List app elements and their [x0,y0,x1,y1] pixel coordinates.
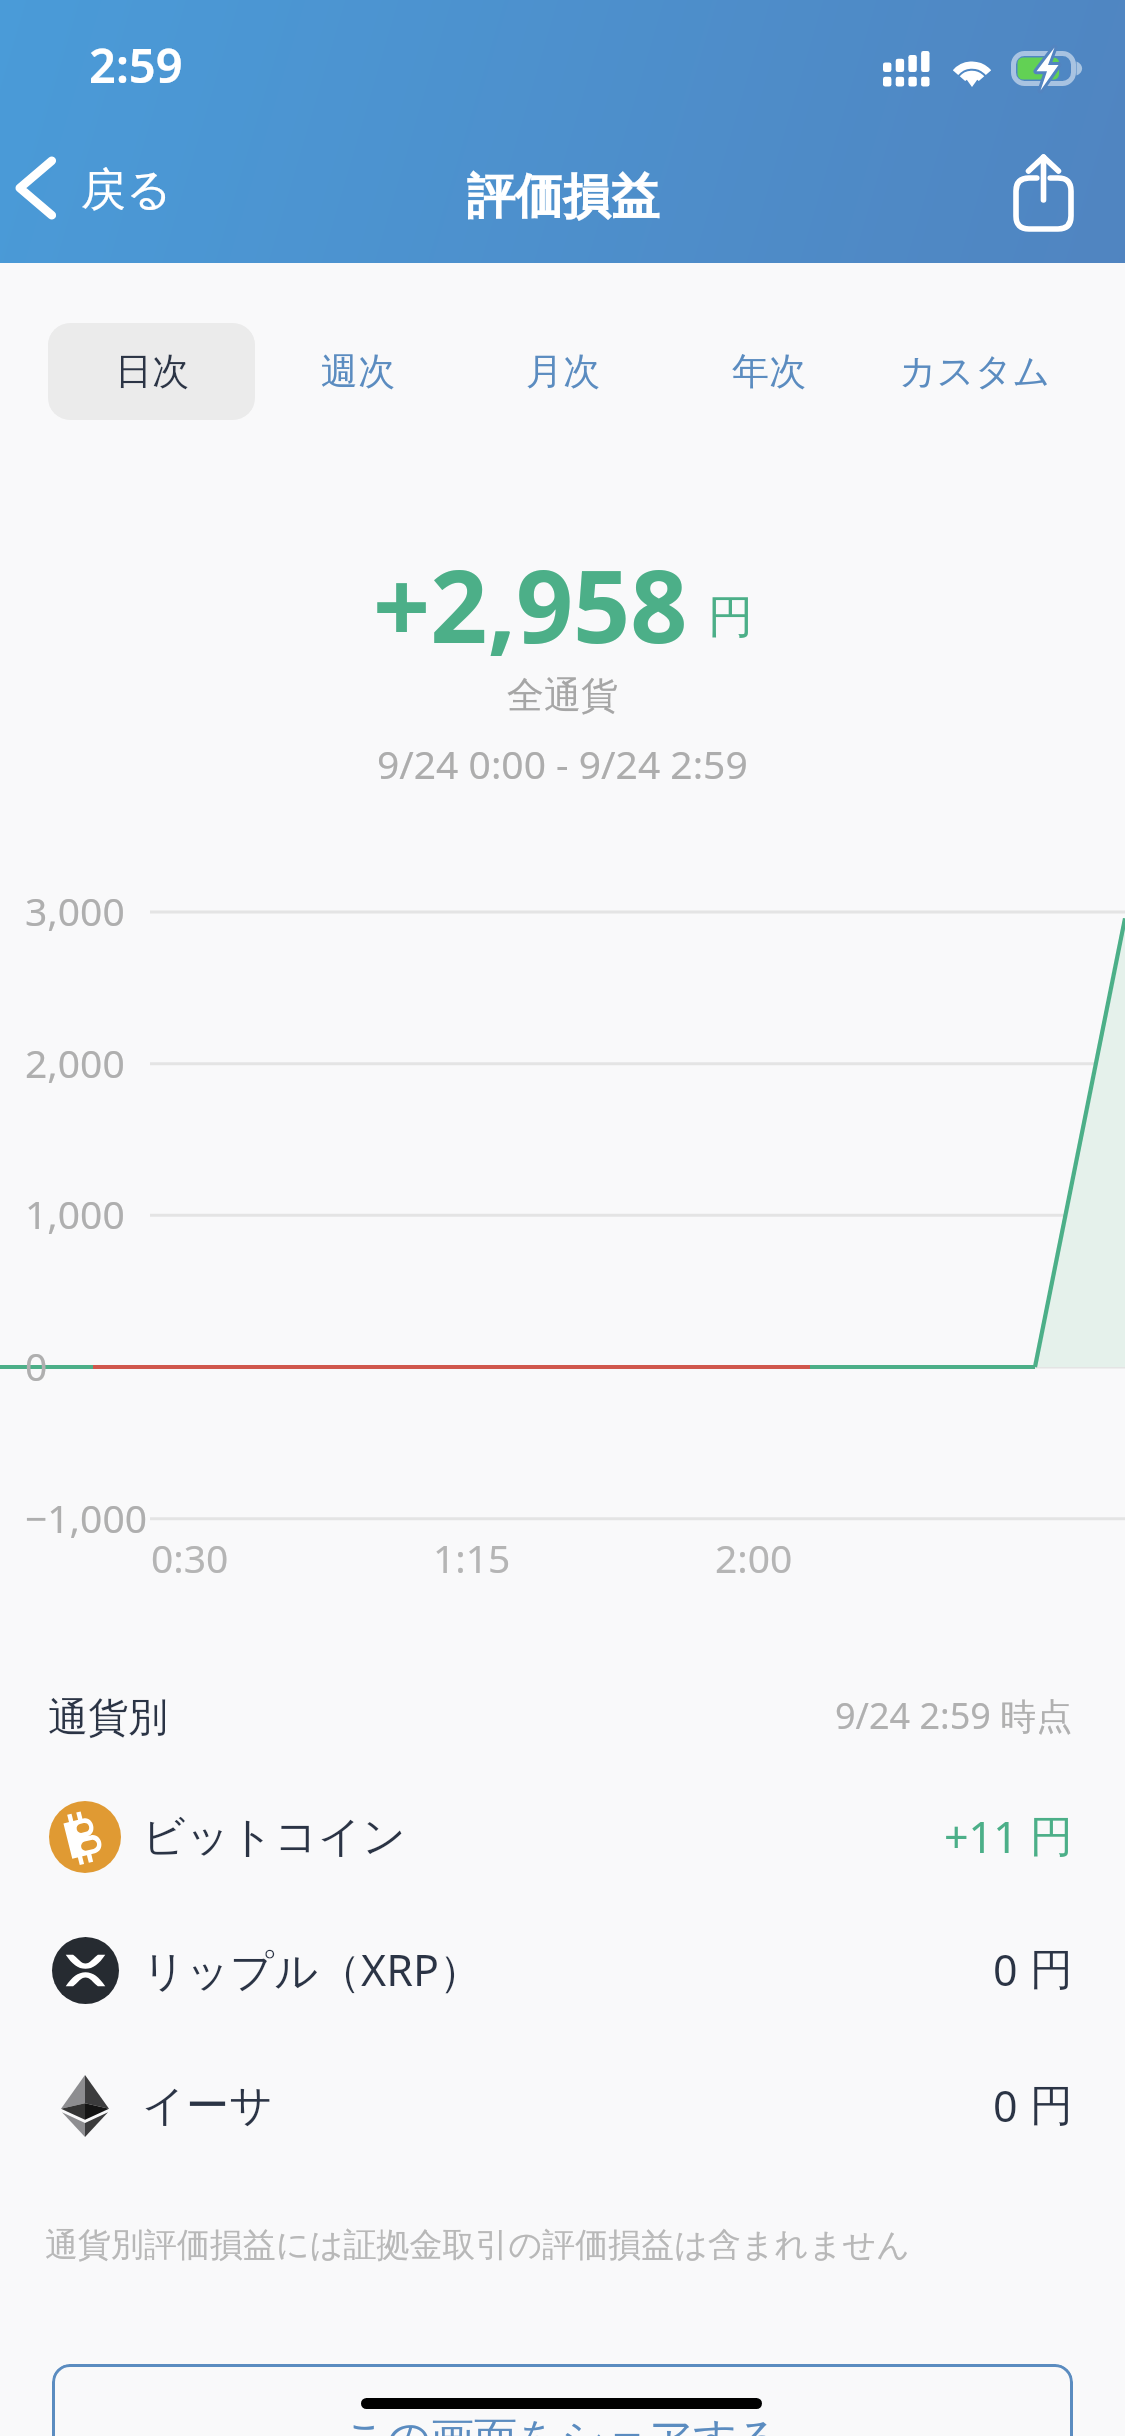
staticText: 2:59 [89,33,183,97]
staticText: 0 [993,2076,1018,2135]
staticText: 0 [993,1940,1018,1999]
staticText: 9/24 2:59 時点 [835,1691,1073,1740]
staticText: 0 [25,1339,48,1392]
staticText: イーサ [142,2079,274,2133]
button[interactable]: 日次 [48,323,255,420]
staticText: 戻る [81,162,173,219]
button[interactable]: ビットコイン [0,1770,1125,1903]
staticText: 年次 [732,348,806,395]
button[interactable]: イーサ [0,2039,1125,2172]
staticText: −1,000 [25,1491,147,1544]
staticText: 円 [1030,1810,1073,1864]
staticText: 月次 [526,348,600,395]
staticText: 週次 [321,348,395,395]
staticText: 0:30 [151,1531,229,1584]
button[interactable]: Share [997,143,1089,243]
staticText: 2:00 [715,1531,793,1584]
button[interactable]: カスタム [855,323,1095,420]
button[interactable]: この画面をシェアする [52,2364,1073,2436]
staticText: ビットコイン [142,1810,407,1864]
staticText: 2,000 [25,1036,125,1089]
staticText: 日次 [115,348,189,395]
staticText: 9/24 0:00 - 9/24 2:59 [377,737,748,790]
staticText: 3,000 [25,884,125,937]
staticText: 通貨別 [48,1692,168,1742]
staticText: 1,000 [25,1187,125,1240]
staticText: カスタム [899,348,1051,395]
button[interactable]: 週次 [254,323,461,420]
staticText: +11 [944,1807,1018,1866]
button[interactable]: 年次 [665,323,872,420]
staticText: 全通貨 [507,672,618,719]
staticText: 円 [1030,2079,1073,2133]
staticText: リップル（XRP） [142,1940,482,1999]
staticText: 通貨別評価損益には証拠金取引の評価損益は含まれません [45,2224,910,2266]
staticText: この画面をシェアする [343,2412,782,2436]
button[interactable]: リップル（XRP） [0,1903,1125,2036]
button[interactable]: Back [1,145,187,231]
button[interactable]: 月次 [459,323,666,420]
staticText: +2,958 [373,536,688,672]
staticText: 円 [1030,1943,1073,1997]
staticText: 1:15 [433,1531,511,1584]
staticText: 評価損益 [467,167,659,227]
staticText: 円 [708,589,753,646]
